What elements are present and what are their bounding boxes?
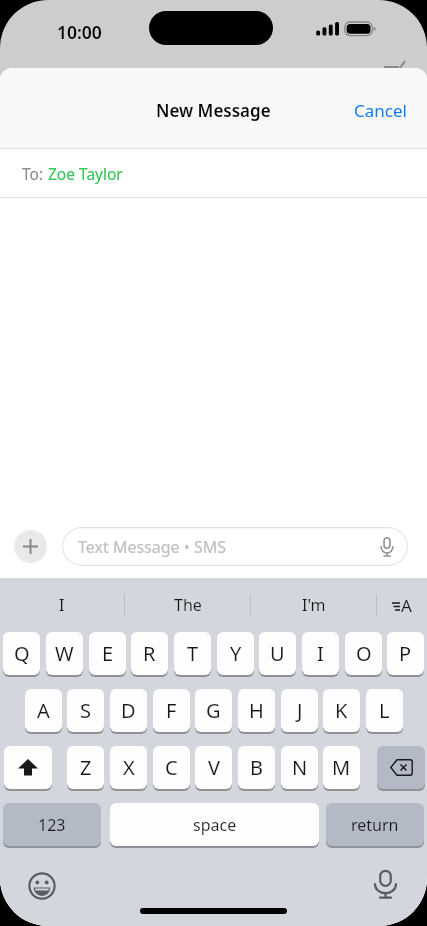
button[interactable]: D: [110, 689, 147, 732]
button[interactable]: E: [89, 632, 126, 675]
button[interactable]: The: [125, 578, 250, 632]
staticText: X: [123, 754, 135, 781]
button[interactable]: I'm: [251, 578, 376, 632]
button[interactable]: return: [326, 803, 424, 846]
button[interactable]: Text Message • SMS: [62, 527, 408, 566]
staticText: T: [187, 640, 199, 667]
staticText: return: [351, 814, 399, 836]
staticText: M: [332, 754, 351, 781]
staticText: U: [270, 640, 285, 667]
staticText: R: [143, 640, 156, 667]
staticText: A: [37, 697, 50, 724]
staticText: Z: [80, 754, 92, 781]
staticText: Cancel: [354, 99, 407, 122]
staticText: New Message: [156, 99, 271, 122]
button[interactable]: I: [302, 632, 339, 675]
staticText: Zoe Taylor: [48, 163, 123, 184]
staticText: H: [249, 697, 264, 724]
staticText: J: [297, 697, 303, 724]
staticText: Q: [14, 640, 30, 667]
button[interactable]: G: [195, 689, 232, 732]
button[interactable]: V: [195, 746, 232, 789]
staticText: G: [206, 697, 221, 724]
button[interactable]: [14, 530, 47, 563]
button[interactable]: J: [281, 689, 318, 732]
staticText: I: [317, 640, 324, 667]
button[interactable]: R: [131, 632, 168, 675]
button[interactable]: 123: [3, 803, 101, 846]
staticText: 10:00: [57, 20, 102, 44]
staticText: Y: [230, 640, 242, 667]
button[interactable]: F: [153, 689, 190, 732]
staticText: I: [59, 594, 65, 616]
staticText: L: [379, 697, 390, 724]
staticText: C: [165, 754, 178, 781]
staticText: N: [292, 754, 308, 781]
button[interactable]: K: [323, 689, 360, 732]
staticText: A: [401, 594, 412, 617]
button[interactable]: N: [281, 746, 318, 789]
button[interactable]: [377, 746, 425, 789]
staticText: O: [356, 640, 372, 667]
staticText: S: [80, 697, 91, 724]
button[interactable]: A: [25, 689, 62, 732]
staticText: V: [208, 754, 220, 781]
button[interactable]: Z: [67, 746, 104, 789]
staticText: The: [174, 594, 202, 616]
button[interactable]: To:: [0, 149, 427, 197]
staticText: I'm: [302, 594, 326, 616]
button[interactable]: B: [238, 746, 275, 789]
button[interactable]: space: [110, 803, 319, 846]
staticText: Text Message • SMS: [78, 536, 227, 558]
staticText: space: [193, 814, 237, 836]
staticText: K: [335, 697, 348, 724]
button[interactable]: P: [387, 632, 424, 675]
staticText: P: [399, 640, 412, 667]
button[interactable]: M: [323, 746, 360, 789]
button[interactable]: C: [153, 746, 190, 789]
staticText: F: [166, 697, 177, 724]
button[interactable]: L: [366, 689, 403, 732]
staticText: D: [121, 697, 136, 724]
button[interactable]: T: [174, 632, 211, 675]
staticText: W: [55, 640, 74, 667]
button[interactable]: H: [238, 689, 275, 732]
button[interactable]: A: [377, 578, 427, 632]
button[interactable]: Cancel: [354, 99, 407, 122]
button[interactable]: Q: [3, 632, 40, 675]
button[interactable]: O: [345, 632, 382, 675]
button[interactable]: W: [46, 632, 83, 675]
button[interactable]: [4, 746, 52, 789]
button[interactable]: U: [259, 632, 296, 675]
button[interactable]: Y: [217, 632, 254, 675]
staticText: B: [250, 754, 263, 781]
staticText: E: [102, 640, 114, 667]
button[interactable]: X: [110, 746, 147, 789]
button[interactable]: [28, 872, 56, 900]
button[interactable]: [373, 870, 398, 899]
staticText: 123: [38, 814, 66, 836]
button[interactable]: I: [0, 578, 124, 632]
staticText: To:: [22, 163, 48, 184]
button[interactable]: S: [67, 689, 104, 732]
